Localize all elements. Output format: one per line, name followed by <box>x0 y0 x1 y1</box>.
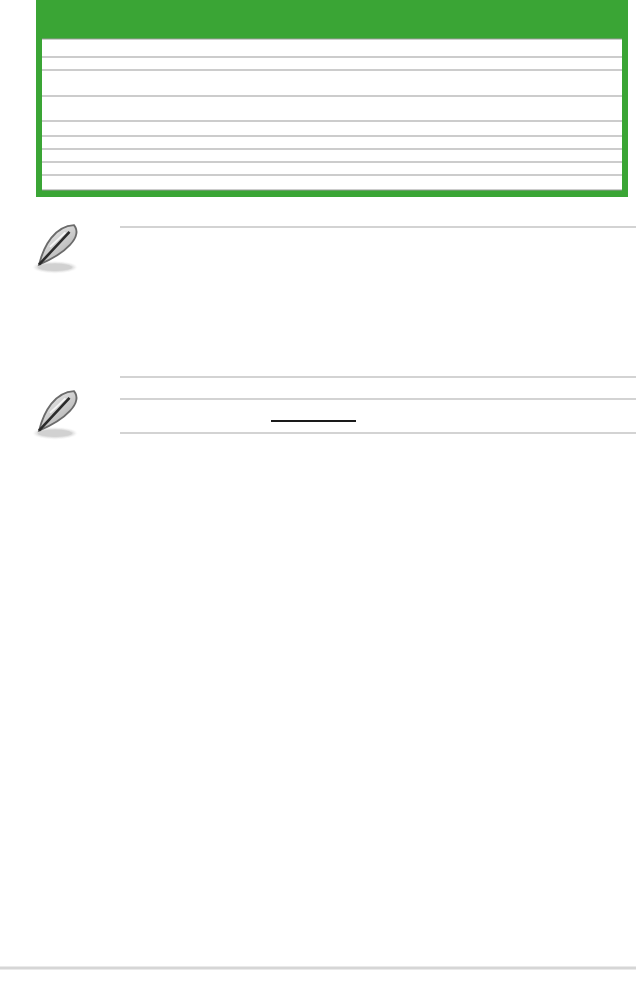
button[interactable]: Specification table <box>36 0 628 197</box>
button[interactable]: Note <box>34 386 86 440</box>
button[interactable]: Note <box>34 220 86 274</box>
